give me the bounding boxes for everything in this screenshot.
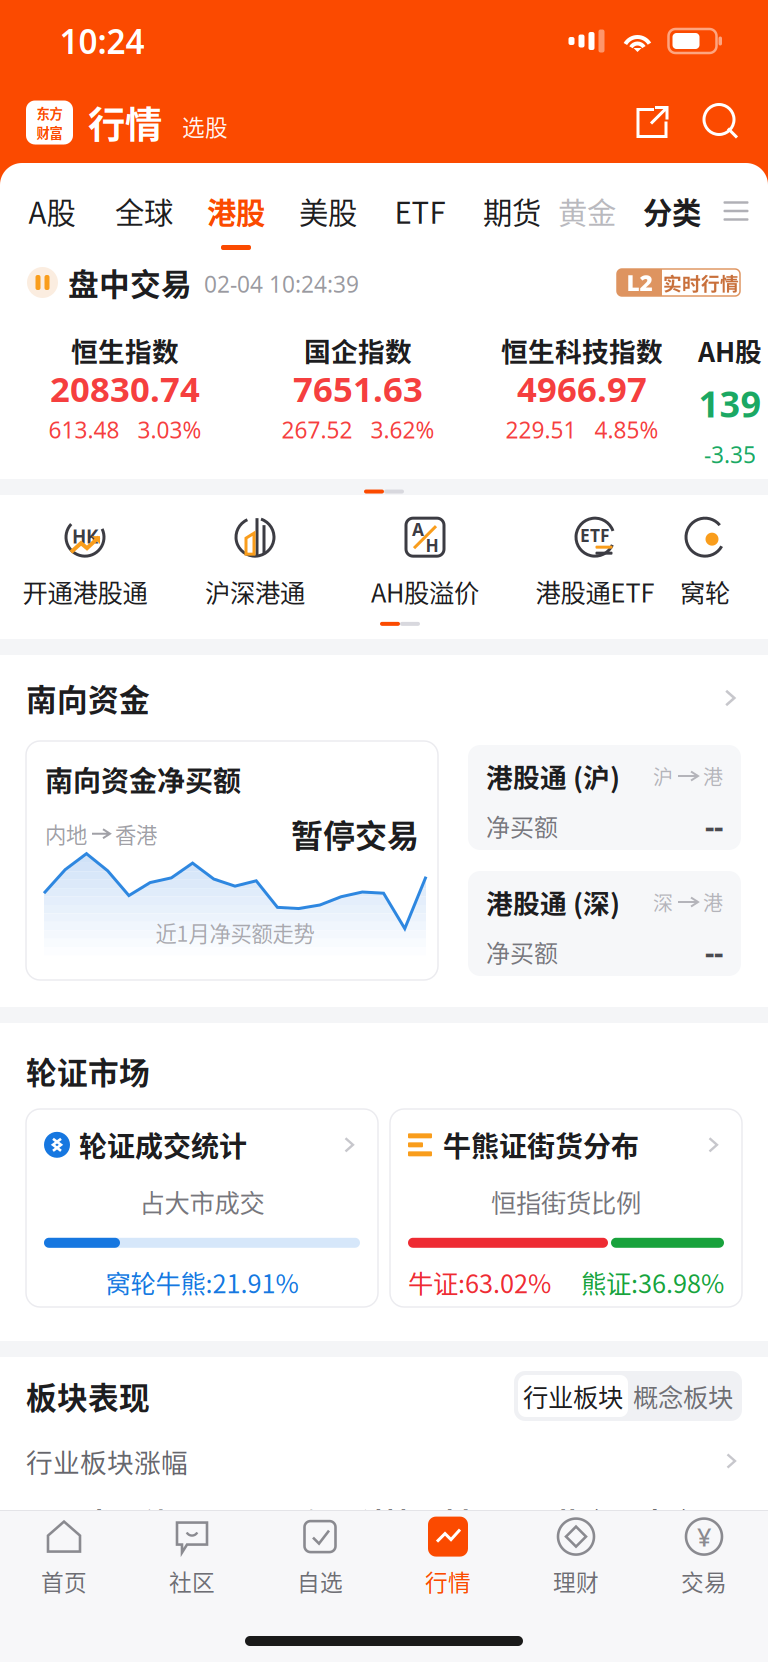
staticText: 恒生指数 <box>71 331 179 369</box>
staticText: ¥ <box>697 1520 711 1553</box>
staticText: 深 <box>653 887 673 916</box>
button[interactable]: 黄金 <box>558 163 614 255</box>
staticText: ETF <box>580 524 610 547</box>
staticText: 南向资金净买额 <box>45 759 241 799</box>
button[interactable]: 美股 <box>282 163 374 255</box>
button[interactable]: 概念板块 <box>628 1375 738 1417</box>
staticText: 实时行情 <box>663 269 739 296</box>
staticText: 行业板块涨幅 <box>26 1442 188 1480</box>
staticText: 10:24 <box>59 19 144 63</box>
staticText: 4966.97 <box>517 365 647 411</box>
button[interactable]: ¥ <box>640 1513 768 1599</box>
staticText: 半导体 <box>84 1501 171 1543</box>
staticText: 港股通 (深) <box>486 883 620 921</box>
button[interactable]: Search <box>694 94 750 150</box>
button[interactable]: 行业板块涨幅 <box>0 1435 768 1487</box>
button[interactable]: Share <box>624 94 680 150</box>
staticText: 7651.63 <box>293 365 423 411</box>
staticText: 选股 <box>182 110 228 142</box>
button[interactable]: 港股通 (深) <box>468 871 741 976</box>
staticText: L2 <box>626 267 652 297</box>
staticText: 理财 <box>553 1565 599 1597</box>
staticText: 全球 <box>115 190 173 232</box>
staticText: 3.62% <box>370 414 434 445</box>
staticText: 社区 <box>169 1565 215 1597</box>
staticText: 沪 <box>653 761 673 790</box>
staticText: 行情 <box>88 95 162 150</box>
staticText: 内地 <box>45 818 87 849</box>
staticText: 窝轮 <box>680 573 730 610</box>
button[interactable]: 轮证成交统计 <box>26 1109 378 1307</box>
staticText: 开通港股通 <box>22 573 147 610</box>
button[interactable]: HK <box>0 514 170 610</box>
button[interactable]: More categories <box>712 163 760 255</box>
staticText: HK <box>72 524 98 549</box>
button[interactable]: 期货 <box>466 163 558 255</box>
button[interactable]: 自选 <box>256 1513 384 1599</box>
staticText: 交易 <box>681 1565 727 1597</box>
staticText: 港 <box>703 761 723 790</box>
staticText: 净买额 <box>486 808 558 843</box>
staticText: 轮证市场 <box>26 1049 150 1093</box>
staticText: AH股 <box>698 331 762 370</box>
button[interactable]: 牛熊证街货分布 <box>390 1109 742 1307</box>
button[interactable]: 港股通 (沪) <box>468 745 741 850</box>
staticText: -- <box>705 932 723 971</box>
staticText: 港股通 (沪) <box>486 757 620 795</box>
staticText: 139 <box>698 380 761 427</box>
button[interactable]: ETF <box>374 163 466 255</box>
staticText: 轮证成交统计 <box>79 1124 247 1165</box>
staticText: 自选 <box>297 1565 343 1597</box>
staticText: 行业板块 <box>523 1378 623 1414</box>
staticText: 02-04 10:24:39 <box>204 269 359 299</box>
staticText: 229.51 <box>505 414 576 445</box>
staticText: 牛证:63.02% <box>408 1264 551 1300</box>
staticText: 板块表现 <box>26 1374 150 1418</box>
staticText: 东方 <box>36 103 62 122</box>
button[interactable]: 行业板块 <box>518 1375 628 1417</box>
staticText: 沪深港通 <box>205 573 305 610</box>
staticText: 期货 <box>483 190 541 232</box>
button[interactable]: 首页 <box>0 1513 128 1599</box>
button[interactable]: 沪深港通 <box>170 514 340 610</box>
staticText: 牛熊证街货分布 <box>443 1124 639 1165</box>
staticText: 黄金 <box>558 190 616 232</box>
button[interactable]: 港股 <box>190 163 282 255</box>
staticText: 近1月净买额走势 <box>155 917 314 948</box>
button[interactable]: 行情 <box>384 1513 512 1599</box>
button[interactable]: A股 <box>6 163 98 255</box>
button[interactable]: 分类 <box>634 163 710 255</box>
button[interactable]: 南向资金 <box>0 655 768 741</box>
staticText: -3.35 <box>704 439 756 469</box>
staticText: A <box>412 518 424 541</box>
staticText: -- <box>705 806 723 845</box>
staticText: 613.48 <box>48 414 119 445</box>
staticText: 恒指街货比例 <box>491 1183 641 1220</box>
staticText: AH股溢价 <box>371 573 479 610</box>
staticText: 20830.74 <box>50 365 200 411</box>
staticText: 分类 <box>643 190 701 232</box>
staticText: 熊证:36.98% <box>581 1264 724 1300</box>
staticText: 行情 <box>425 1565 471 1597</box>
button[interactable]: 全球 <box>98 163 190 255</box>
staticText: 暂停交易 <box>291 810 419 857</box>
staticText: ETF <box>394 190 445 232</box>
button[interactable]: 近1月净买额走势 <box>26 741 438 980</box>
button[interactable]: ETF <box>510 514 680 610</box>
staticText: 美股 <box>299 190 357 232</box>
staticText: 黄金及贵金属 <box>553 1501 727 1543</box>
staticText: 资讯科技器材 <box>297 1501 471 1543</box>
staticText: H <box>425 534 438 557</box>
staticText: 南向资金 <box>26 676 150 720</box>
button[interactable]: A <box>340 514 510 610</box>
staticText: 港 <box>703 887 723 916</box>
staticText: 香港 <box>115 818 157 849</box>
staticText: 国企指数 <box>304 331 412 369</box>
staticText: 恒生科技指数 <box>501 331 663 369</box>
staticText: A股 <box>28 190 75 232</box>
staticText: 窝轮牛熊:21.91% <box>105 1264 298 1300</box>
button[interactable]: 社区 <box>128 1513 256 1599</box>
staticText: 港股通ETF <box>535 573 654 610</box>
button[interactable]: 理财 <box>512 1513 640 1599</box>
staticText: 港股 <box>207 190 265 232</box>
